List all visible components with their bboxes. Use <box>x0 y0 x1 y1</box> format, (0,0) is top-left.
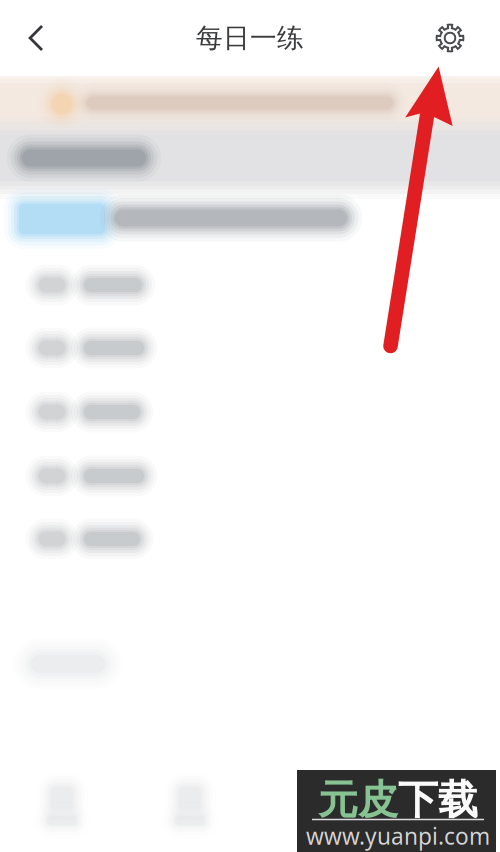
button[interactable] <box>0 380 300 444</box>
button[interactable]: Settings <box>424 7 476 69</box>
staticText: 下载 <box>398 775 478 824</box>
button[interactable]: Back <box>10 7 62 69</box>
button[interactable] <box>0 444 300 508</box>
button[interactable] <box>0 507 300 571</box>
button[interactable]: Tab two <box>135 775 245 837</box>
button[interactable] <box>0 253 300 317</box>
staticText: 每日一练 <box>196 22 304 54</box>
staticText: www.yuanpi.com <box>306 821 490 851</box>
button[interactable]: Tab one <box>7 775 117 837</box>
staticText: 元皮 <box>318 775 398 824</box>
button[interactable] <box>0 316 300 380</box>
